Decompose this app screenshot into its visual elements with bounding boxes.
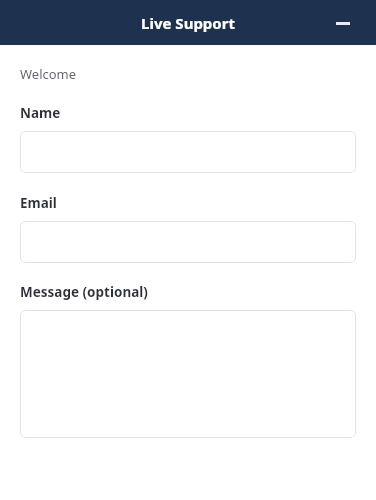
staticText: Message (optional) (20, 283, 148, 301)
staticText: Email (20, 194, 57, 212)
button[interactable]: Message input (20, 310, 356, 438)
button[interactable]: Email input (20, 221, 356, 263)
staticText: Welcome (20, 65, 77, 83)
staticText: Live Support (0, 13, 376, 33)
staticText: Name (20, 104, 61, 122)
button[interactable]: Name input (20, 131, 356, 173)
button[interactable]: Minimize (333, 13, 353, 33)
